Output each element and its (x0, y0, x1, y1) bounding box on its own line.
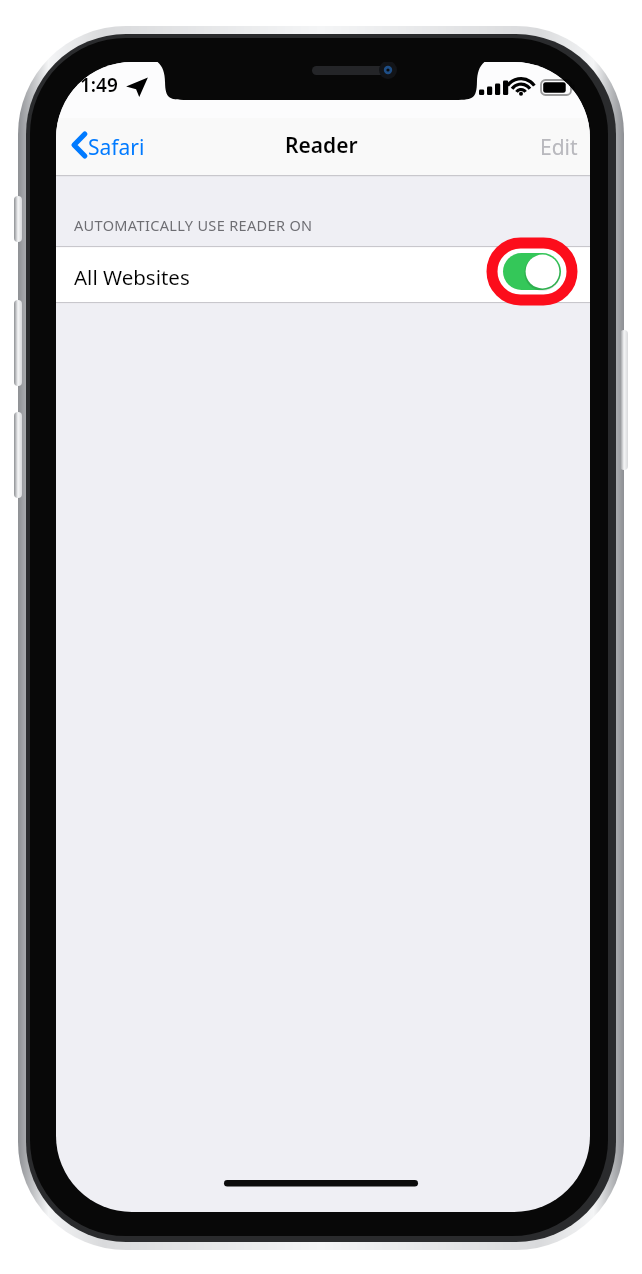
button[interactable]: Safari (64, 126, 180, 168)
button[interactable]: All Websites (0, 247, 642, 303)
staticText: Edit (540, 133, 578, 162)
staticText: 1:49 (80, 72, 118, 98)
staticText: Reader (285, 131, 358, 160)
button[interactable]: Automatically use Reader on All Websites (503, 253, 561, 290)
staticText: AUTOMATICALLY USE READER ON (74, 215, 313, 235)
staticText: All Websites (74, 263, 190, 291)
staticText: Safari (88, 133, 145, 162)
button[interactable]: Edit (512, 126, 578, 168)
